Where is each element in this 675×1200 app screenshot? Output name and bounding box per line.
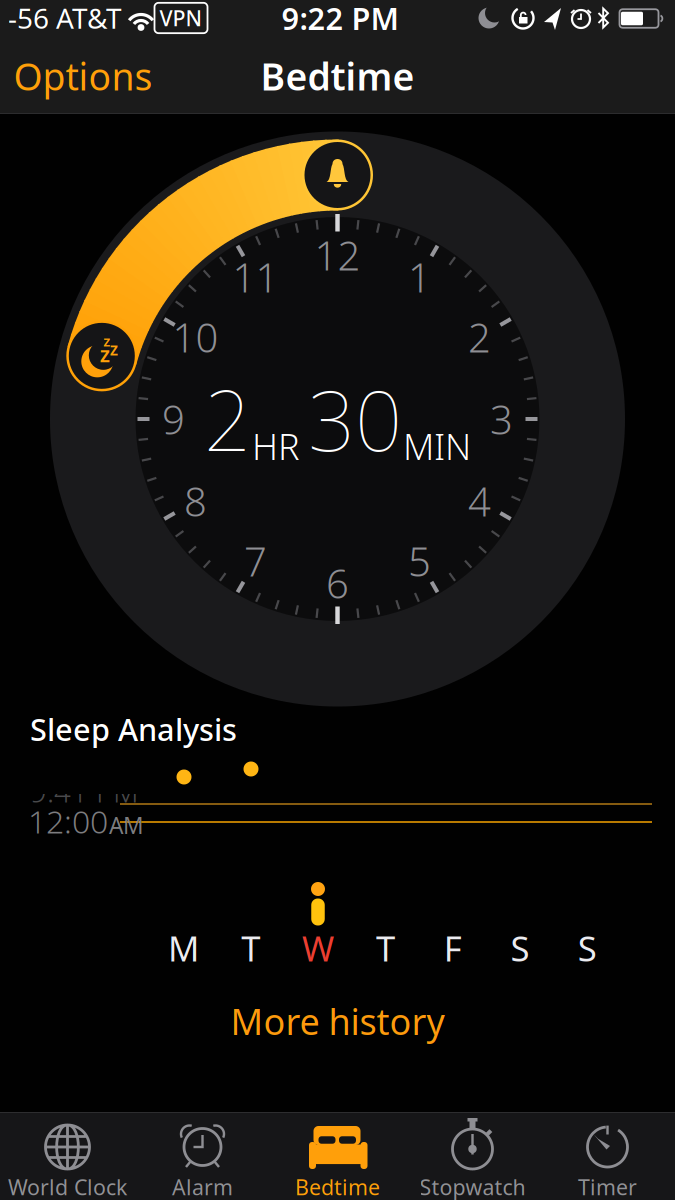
- button[interactable]: Bedtime: [270, 1112, 405, 1200]
- staticText: Bedtime: [295, 1173, 380, 1200]
- staticText: Alarm: [172, 1173, 233, 1200]
- staticText: Stopwatch: [419, 1173, 525, 1200]
- button[interactable]: World Clock: [0, 1112, 135, 1200]
- staticText: 2: [468, 310, 491, 363]
- staticText: World Clock: [8, 1173, 127, 1200]
- staticText: 12:00: [28, 800, 108, 842]
- staticText: 9:22 PM: [281, 0, 398, 38]
- staticText: More history: [230, 997, 444, 1045]
- staticText: 11: [232, 250, 278, 303]
- staticText: Bedtime: [260, 51, 414, 101]
- button[interactable]: [302, 140, 372, 210]
- staticText: z: [103, 331, 110, 351]
- staticText: Options: [13, 51, 152, 101]
- button[interactable]: Options: [13, 51, 152, 101]
- button[interactable]: Timer: [540, 1112, 675, 1200]
- staticText: 1: [408, 250, 431, 303]
- button[interactable]: Stopwatch: [405, 1112, 540, 1200]
- staticText: 8: [184, 474, 207, 527]
- staticText: 5: [408, 534, 431, 588]
- staticText: F: [444, 925, 462, 971]
- button[interactable]: More history: [230, 997, 444, 1045]
- staticText: 10: [172, 310, 218, 363]
- staticText: 9: [162, 392, 185, 445]
- staticText: AM: [109, 810, 144, 840]
- button[interactable]: Alarm: [135, 1112, 270, 1200]
- staticText: VPN: [159, 4, 202, 32]
- staticText: 7: [244, 534, 267, 588]
- staticText: 3: [490, 392, 513, 445]
- staticText: W: [302, 925, 334, 971]
- staticText: T: [376, 925, 395, 971]
- staticText: Sleep Analysis: [30, 709, 237, 749]
- staticText: 9:41 PM: [30, 771, 139, 810]
- staticText: MIN: [403, 422, 471, 470]
- staticText: S: [578, 925, 597, 971]
- staticText: z: [110, 337, 118, 360]
- staticText: -56 AT&T: [8, 0, 122, 37]
- staticText: M: [168, 925, 199, 971]
- staticText: Timer: [578, 1173, 637, 1200]
- button[interactable]: [67, 321, 137, 391]
- staticText: 30: [308, 364, 402, 474]
- staticText: S: [510, 925, 529, 971]
- staticText: 6: [326, 556, 349, 609]
- staticText: 2: [204, 364, 251, 474]
- staticText: HR: [252, 422, 300, 470]
- staticText: 4: [468, 474, 491, 527]
- staticText: T: [241, 925, 260, 971]
- staticText: 12: [314, 228, 360, 281]
- staticText: z: [100, 340, 110, 368]
